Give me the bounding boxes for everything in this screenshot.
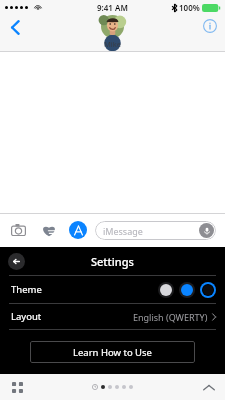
button[interactable]: Details	[201, 17, 219, 35]
button[interactable]: Theme	[0, 276, 225, 303]
button[interactable]: Expand	[200, 378, 218, 396]
button[interactable]: Theme colour	[158, 282, 174, 298]
button[interactable]: Back	[4, 16, 26, 38]
button[interactable]: App Store	[69, 221, 87, 239]
button[interactable]: Layout	[0, 304, 225, 329]
button[interactable]: Mike	[101, 15, 124, 49]
button[interactable]: Back	[8, 253, 25, 270]
staticText: Settings	[91, 254, 134, 269]
staticText: Learn How to Use	[73, 346, 152, 359]
button[interactable]: Theme colour	[200, 282, 216, 298]
button[interactable]: iMessage	[95, 221, 216, 240]
staticText: Layout	[11, 310, 42, 323]
button[interactable]: Digital Touch	[38, 219, 60, 241]
staticText: 9:41 AM	[97, 2, 128, 13]
staticText: Theme	[11, 283, 42, 296]
button[interactable]: Apps	[8, 378, 26, 396]
other: Dictate	[199, 223, 214, 238]
button[interactable]: Theme colour	[179, 282, 195, 298]
button[interactable]: Learn How to Use	[30, 341, 195, 363]
button[interactable]: Camera	[7, 219, 29, 241]
staticText: Mike	[104, 39, 121, 49]
staticText: 100%	[179, 2, 200, 13]
staticText: English (QWERTY)	[133, 311, 208, 323]
staticText: iMessage	[103, 225, 143, 237]
